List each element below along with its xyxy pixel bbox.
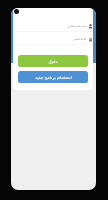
button[interactable]: دخول — [18, 55, 88, 67]
staticText: استخدام برنامج جديد — [35, 74, 72, 80]
staticText: كلمة السر — [73, 37, 87, 41]
other: User name — [88, 24, 93, 29]
staticText: اسم المستخدم — [67, 24, 87, 28]
staticText: دخول — [48, 59, 58, 64]
button[interactable]: اسم المستخدم — [16, 21, 93, 32]
other: Password — [88, 37, 93, 42]
button[interactable]: كلمة السر — [16, 34, 93, 45]
button[interactable]: استخدام برنامج جديد — [18, 71, 88, 83]
